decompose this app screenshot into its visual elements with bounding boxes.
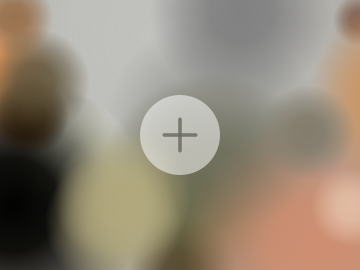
button[interactable]: Add xyxy=(140,95,220,175)
